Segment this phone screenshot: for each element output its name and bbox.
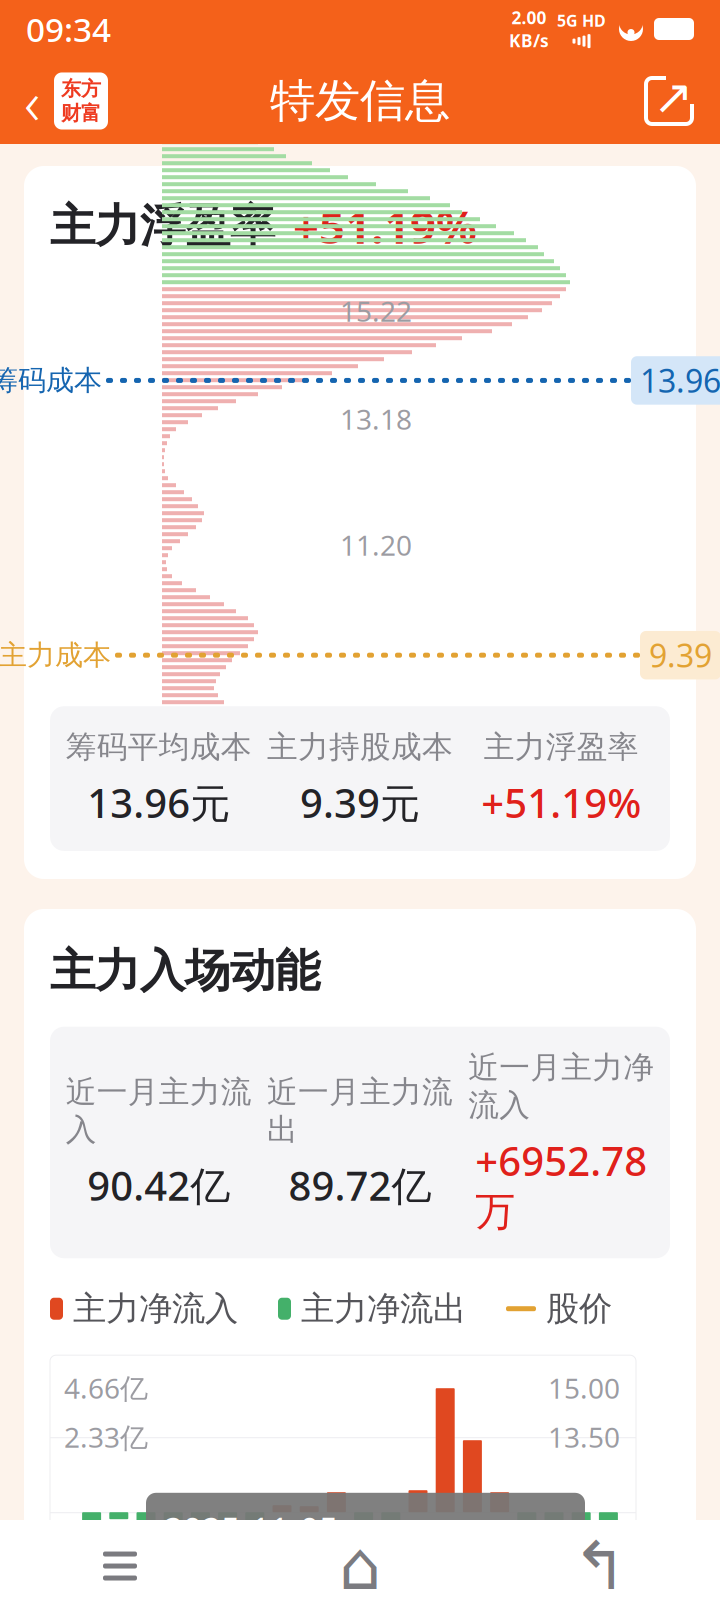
button[interactable]: 主屏幕 (240, 1520, 480, 1612)
staticText: 主力净流出： (192, 1560, 390, 1601)
staticText: 9.39元 (300, 776, 420, 829)
staticText: 主力净流入 (73, 1288, 238, 1329)
staticText: 财富 (61, 101, 101, 126)
staticText: 近一月主力净流入 (468, 1049, 654, 1124)
staticText: 筹码成本 (0, 363, 102, 398)
staticText: 主力持股成本 (267, 728, 453, 766)
button[interactable]: 返回 (24, 60, 108, 142)
staticText: 11.20 (340, 526, 412, 563)
staticText: 13.50 (548, 1418, 620, 1456)
button[interactable]: 返回 (480, 1520, 720, 1612)
staticText: 主力成本 (0, 638, 111, 672)
staticText: 9.39 (649, 634, 712, 676)
staticText: 12.00 (548, 1514, 620, 1551)
staticText: 主力净流出 (301, 1288, 466, 1329)
staticText: ↰ (572, 1528, 628, 1604)
staticText: 89.72亿 (288, 1159, 431, 1212)
staticText: 2025-11-05 (164, 1507, 338, 1551)
button[interactable]: 最近任务 (0, 1520, 240, 1612)
staticText: 东方 (61, 76, 101, 101)
staticText: 13.18 (340, 400, 412, 437)
staticText: +51.19% (481, 776, 641, 829)
staticText: 股价 (546, 1288, 612, 1329)
staticText: 90.42亿 (87, 1159, 230, 1212)
staticText: 特发信息 (270, 73, 450, 129)
staticText: 2.33亿 (64, 1418, 148, 1456)
staticText: 主力入场动能 (50, 943, 320, 999)
staticText: 主力浮盈率 (484, 728, 639, 766)
staticText: +51.19% (293, 196, 477, 256)
staticText: 13.96元 (87, 776, 230, 829)
staticText: +6952.78万 (475, 1134, 647, 1236)
staticText: 筹码平均成本 (66, 728, 252, 766)
staticText: 主力浮盈率 (50, 198, 275, 254)
staticText: 15.00 (548, 1369, 620, 1406)
button[interactable]: 分享 (642, 74, 696, 128)
staticText: ‹ (24, 60, 40, 142)
staticText: 5G HD (557, 10, 606, 31)
staticText: ↗ (653, 70, 693, 124)
staticText: 0.00 (64, 1514, 120, 1551)
staticText: ⌂ (339, 1528, 381, 1604)
staticText: 2.00 (511, 6, 546, 29)
staticText: 4.66亿 (64, 1369, 148, 1406)
staticText: 15.22 (340, 292, 412, 329)
staticText: 近一月主力流出 (267, 1073, 453, 1148)
staticText: 09:34 (26, 7, 111, 51)
staticText: 13.96 (640, 359, 720, 402)
staticText: 近一月主力流入 (66, 1073, 252, 1148)
staticText: KB/s (509, 29, 549, 52)
